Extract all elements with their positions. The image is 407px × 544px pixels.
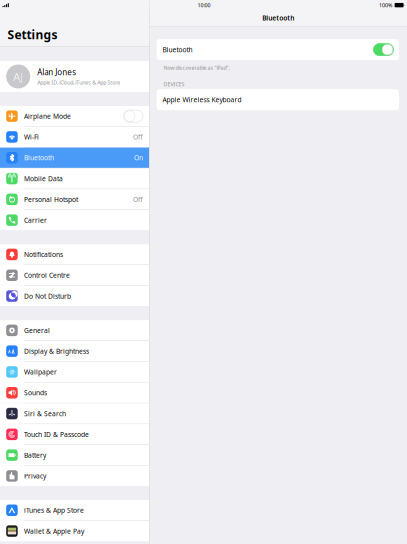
staticText: Bluetooth — [163, 45, 193, 54]
button[interactable]: Apple Wireless Keyboard — [150, 89, 407, 110]
button[interactable]: Personal Hotspot — [0, 189, 149, 209]
staticText: Settings — [7, 27, 57, 43]
button[interactable]: Display & Brightness — [0, 341, 149, 361]
staticText: 10:00 — [197, 2, 210, 9]
staticText: Siri & Search — [24, 409, 66, 418]
button[interactable]: General — [0, 320, 149, 340]
button[interactable]: Battery — [0, 445, 149, 465]
button[interactable]: Bluetooth — [373, 44, 393, 56]
staticText: Off — [133, 195, 143, 204]
staticText: On — [134, 153, 143, 162]
button[interactable]: Mobile Data — [0, 168, 149, 189]
button[interactable]: Sounds — [0, 383, 149, 403]
button[interactable]: iTunes & App Store — [0, 500, 149, 520]
button[interactable]: Wi-Fi — [0, 127, 149, 147]
staticText: Now discoverable as “iPad”. — [164, 64, 230, 71]
staticText: Bluetooth — [262, 14, 294, 22]
staticText: Wallpaper — [24, 367, 57, 376]
button[interactable]: Wallet & Apple Pay — [0, 521, 149, 541]
staticText: Wi-Fi — [24, 132, 39, 141]
staticText: AJ — [13, 69, 23, 84]
staticText: Off — [133, 132, 143, 141]
staticText: Apple ID, iCloud, iTunes & App Store — [37, 79, 120, 86]
button[interactable]: Bluetooth — [0, 148, 149, 168]
button[interactable]: Privacy — [0, 466, 149, 486]
staticText: iTunes & App Store — [24, 506, 84, 515]
staticText: Carrier — [24, 216, 47, 225]
staticText: Airplane Mode — [24, 112, 71, 121]
staticText: Sounds — [24, 388, 47, 397]
button[interactable]: Touch ID & Passcode — [0, 424, 149, 444]
button[interactable]: Airplane Mode — [0, 106, 149, 126]
staticText: Wallet & Apple Pay — [24, 527, 84, 535]
staticText: 100% — [379, 2, 392, 9]
staticText: Display & Brightness — [24, 347, 89, 356]
staticText: Control Centre — [24, 271, 70, 280]
button[interactable]: AJ — [0, 61, 149, 92]
staticText: Do Not Disturb — [24, 292, 71, 300]
staticText: Apple Wireless Keyboard — [163, 95, 242, 104]
button[interactable]: Notifications — [0, 244, 149, 265]
button[interactable]: Carrier — [0, 210, 149, 230]
staticText: DEVICES — [164, 81, 185, 88]
staticText: Battery — [24, 451, 46, 460]
staticText: Alan Jones — [37, 67, 76, 77]
button[interactable]: Wallpaper — [0, 362, 149, 382]
staticText: General — [24, 326, 50, 335]
staticText: Bluetooth — [24, 153, 54, 162]
staticText: Notifications — [24, 250, 63, 259]
staticText: Mobile Data — [24, 174, 63, 183]
staticText: Touch ID & Passcode — [24, 430, 89, 439]
button[interactable]: Control Centre — [0, 265, 149, 285]
button[interactable]: Siri & Search — [0, 403, 149, 424]
button[interactable]: Do Not Disturb — [0, 286, 149, 306]
staticText: Personal Hotspot — [24, 195, 78, 204]
staticText: Privacy — [24, 471, 46, 480]
